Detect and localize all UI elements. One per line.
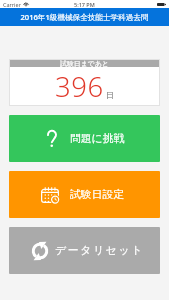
button[interactable]: Challenge questions bbox=[9, 115, 160, 162]
staticText: 問題に挑戦 bbox=[70, 132, 125, 146]
staticText: 2016年1級機械保全技能士学科過去問 bbox=[20, 12, 149, 22]
staticText: データリセット bbox=[55, 244, 144, 258]
staticText: 日 bbox=[106, 90, 114, 100]
staticText: Carrier bbox=[3, 1, 21, 8]
button[interactable]: Set exam date bbox=[9, 171, 160, 218]
staticText: 396 bbox=[55, 68, 104, 105]
staticText: 5:17 PM bbox=[74, 1, 95, 8]
staticText: 試験日設定 bbox=[70, 188, 124, 202]
staticText: 試験日まであと bbox=[60, 59, 109, 67]
button[interactable]: Reset data bbox=[9, 227, 160, 274]
